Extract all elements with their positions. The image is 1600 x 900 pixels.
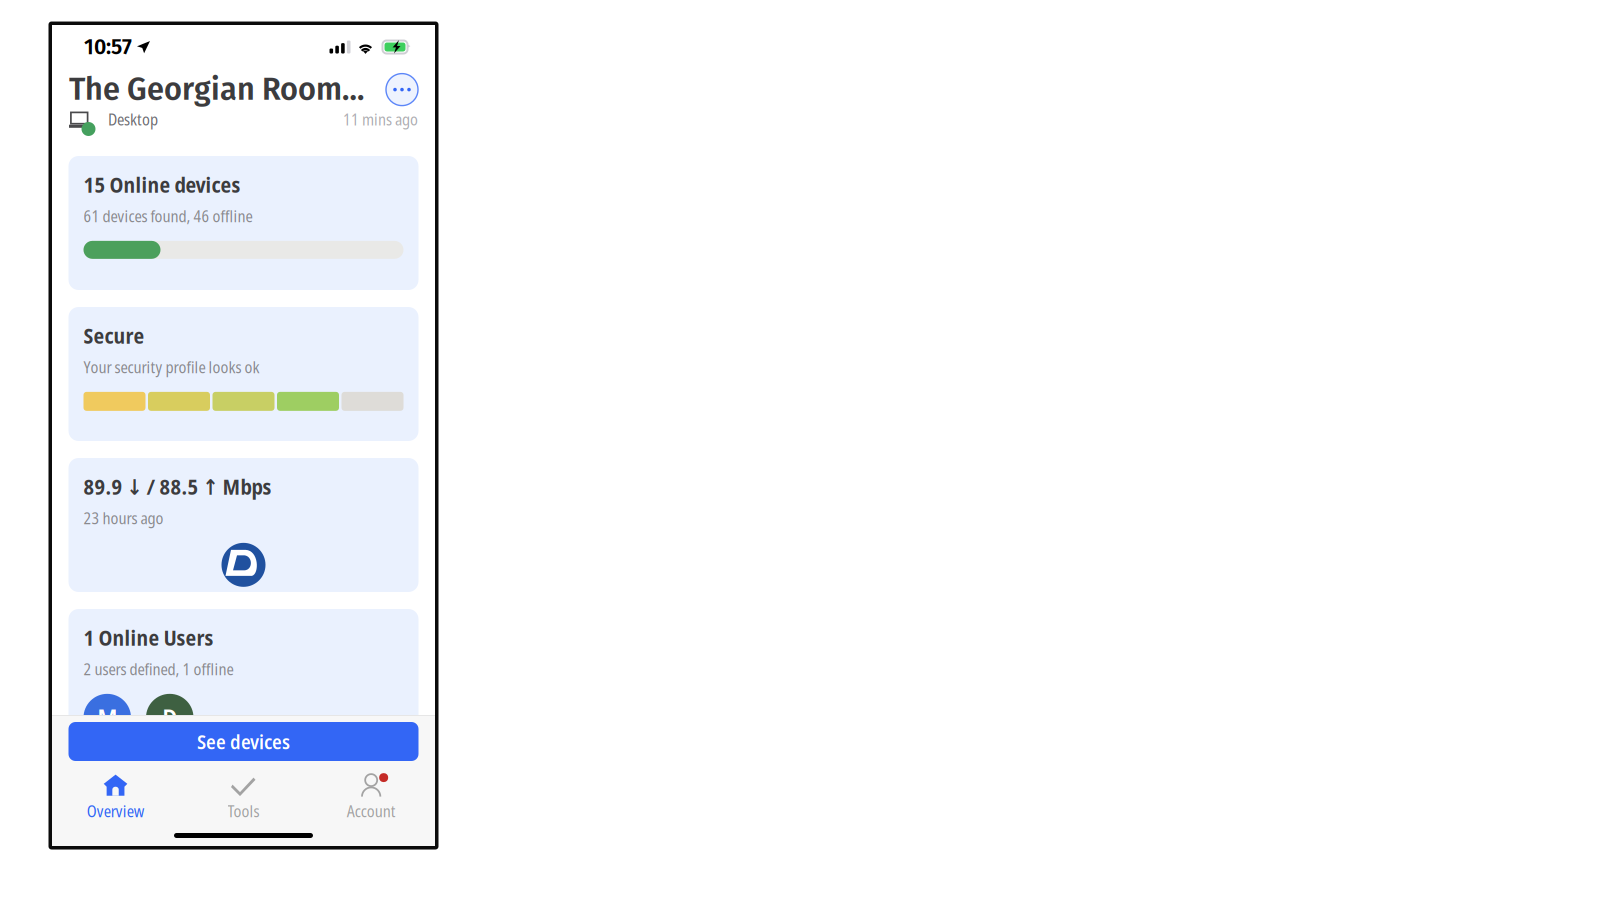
staticText: 23 hours ago [83, 507, 163, 529]
button[interactable]: Tools [180, 777, 307, 819]
button[interactable]: See devices [68, 722, 418, 761]
staticText: Your security profile looks ok [83, 356, 259, 378]
staticText: 61 devices found, 46 offline [83, 205, 252, 227]
staticText: Overview [87, 800, 145, 822]
staticText: M [97, 700, 117, 735]
staticText: Secure [83, 321, 144, 350]
staticText: See devices [197, 728, 290, 755]
staticText: 2 users defined, 1 offline [83, 658, 233, 680]
button[interactable]: More options [386, 74, 418, 106]
staticText: 10:57 [84, 34, 132, 60]
staticText: 89.9 ↓ / 88.5 ↑ Mbps [83, 472, 271, 501]
staticText: Account [347, 800, 396, 822]
staticText: Tools [227, 800, 259, 822]
button[interactable]: Overview [52, 777, 180, 819]
staticText: The Georgian Room… [69, 71, 364, 108]
staticText: 1 Online Users [83, 623, 213, 652]
staticText: Desktop [108, 108, 158, 130]
staticText: 15 Online devices [83, 170, 240, 199]
staticText: D [162, 700, 177, 735]
staticText: 11 mins ago [343, 108, 418, 130]
button[interactable]: Account [307, 777, 435, 819]
